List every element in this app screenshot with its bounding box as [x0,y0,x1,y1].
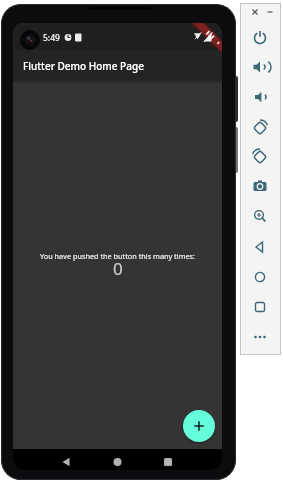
button[interactable] [248,265,272,289]
staticText: 5:49 [43,32,60,44]
staticText: Flutter Demo Home Page [23,59,144,73]
button[interactable] [154,452,174,470]
button[interactable] [248,295,272,319]
button[interactable] [248,55,272,79]
staticText: You have pushed the button this many tim… [40,251,196,261]
button[interactable] [243,0,267,24]
button[interactable] [107,452,127,470]
button[interactable] [248,144,272,168]
button[interactable] [248,204,272,228]
button[interactable]: Flutter Demo Home Page [13,50,222,81]
button[interactable] [258,0,282,24]
button[interactable] [248,85,272,109]
button[interactable] [248,325,272,349]
button[interactable] [248,174,272,198]
button[interactable] [248,26,272,50]
button[interactable] [248,235,272,259]
button[interactable] [183,410,215,442]
button[interactable] [248,115,272,139]
staticText: 0 [113,257,123,280]
button[interactable] [56,452,76,470]
